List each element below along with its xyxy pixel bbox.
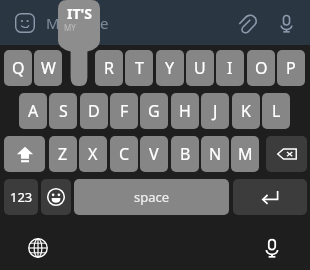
button[interactable]: C <box>110 136 138 172</box>
button[interactable]: Q <box>4 50 32 86</box>
button[interactable]: N <box>201 136 229 172</box>
button[interactable]: Y <box>156 50 184 86</box>
staticText: N <box>209 143 222 165</box>
button[interactable]: G <box>140 93 168 129</box>
button[interactable]: P <box>277 50 305 86</box>
button[interactable]: T <box>125 50 153 86</box>
button[interactable]: O <box>247 50 275 86</box>
staticText: Y <box>165 57 175 79</box>
staticText: 123 <box>10 188 33 206</box>
button[interactable]: J <box>201 93 229 129</box>
staticText: D <box>88 100 100 122</box>
staticText: F <box>120 100 129 122</box>
button[interactable]: Change keyboard language <box>22 232 54 264</box>
staticText: S <box>59 100 68 122</box>
staticText: Q <box>12 57 25 79</box>
staticText: V <box>149 143 159 165</box>
button[interactable]: X <box>79 136 107 172</box>
button[interactable]: Attach <box>230 7 262 39</box>
button[interactable]: Enter <box>233 179 307 215</box>
button[interactable]: B <box>171 136 199 172</box>
staticText: B <box>180 143 191 165</box>
button[interactable]: V <box>140 136 168 172</box>
button[interactable]: R <box>95 50 123 86</box>
staticText: IT'S <box>67 4 92 23</box>
staticText: I <box>227 57 233 79</box>
staticText: X <box>88 143 98 165</box>
button[interactable]: M <box>231 136 259 172</box>
staticText: C <box>119 143 130 165</box>
button[interactable]: Backspace <box>266 136 307 172</box>
staticText: O <box>255 57 268 79</box>
staticText: W <box>41 57 56 79</box>
button[interactable]: Z <box>49 136 77 172</box>
staticText: P <box>286 57 296 79</box>
button[interactable]: 123 <box>4 179 38 215</box>
staticText: A <box>28 100 39 122</box>
staticText: U <box>194 57 206 79</box>
staticText: Z <box>58 143 68 165</box>
button[interactable]: D <box>80 93 108 129</box>
button[interactable]: Voice message <box>270 7 302 39</box>
button[interactable]: space <box>74 179 229 215</box>
button[interactable]: H <box>171 93 199 129</box>
staticText: R <box>104 57 114 79</box>
staticText: T <box>135 57 144 79</box>
button[interactable]: S <box>49 93 77 129</box>
button[interactable]: Emoji <box>41 179 71 215</box>
button[interactable]: W <box>34 50 62 86</box>
staticText: J <box>213 100 218 122</box>
staticText: M <box>238 143 253 165</box>
staticText: Message <box>46 13 109 33</box>
button[interactable]: L <box>262 93 290 129</box>
button[interactable]: I <box>216 50 244 86</box>
button[interactable]: Stickers <box>10 8 40 38</box>
button[interactable]: Voice input <box>256 232 288 264</box>
staticText: H <box>179 100 191 122</box>
staticText: G <box>148 100 160 122</box>
staticText: MY <box>64 22 76 33</box>
staticText: K <box>241 100 251 122</box>
button[interactable]: Shift <box>4 136 45 172</box>
staticText: space <box>134 188 170 206</box>
button[interactable]: K <box>232 93 260 129</box>
button[interactable]: U <box>186 50 214 86</box>
staticText: L <box>272 100 281 122</box>
button[interactable]: F <box>110 93 138 129</box>
button[interactable]: A <box>19 93 47 129</box>
